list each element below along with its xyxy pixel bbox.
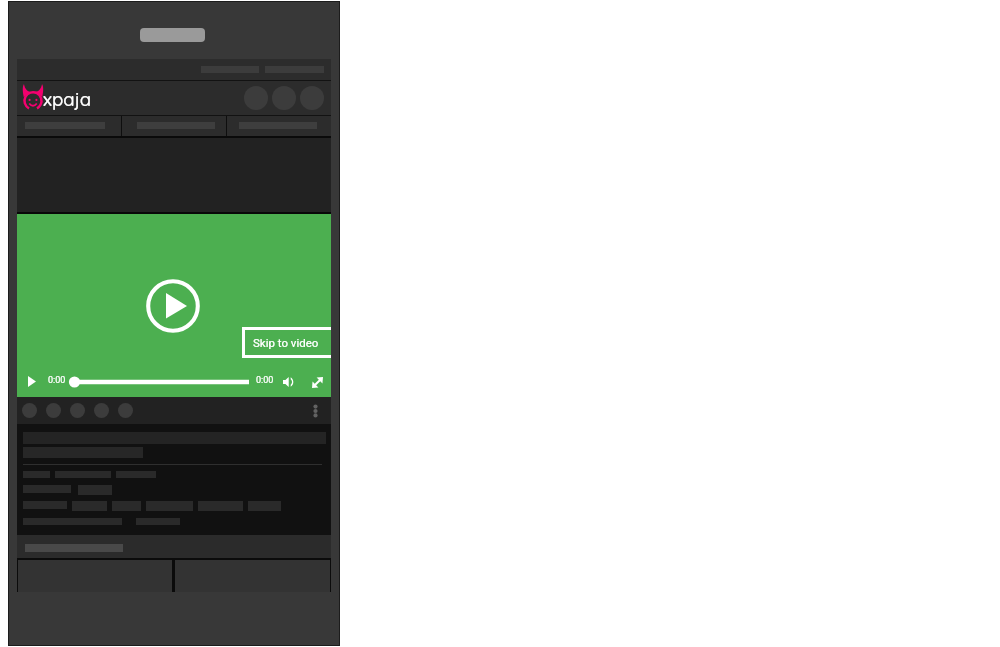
button[interactable]: Tab 2	[122, 116, 226, 136]
button[interactable]: Tab 1	[17, 116, 121, 136]
button[interactable]: Play	[28, 376, 36, 387]
staticText: xpaja	[43, 87, 92, 110]
button[interactable]: Header action 2	[272, 86, 296, 110]
button[interactable]: Chip 2	[46, 403, 61, 418]
button[interactable]: Chip 4	[94, 403, 109, 418]
button[interactable]: Header action 1	[244, 86, 268, 110]
button[interactable]: Volume	[283, 377, 294, 387]
button[interactable]: Chip 3	[70, 403, 85, 418]
button[interactable]: Header action 3	[300, 86, 324, 110]
button[interactable]: Fullscreen	[312, 377, 323, 388]
button[interactable]: Tab 3	[227, 116, 331, 136]
staticText: 0:00	[256, 375, 274, 386]
button[interactable]: Chip 5	[118, 403, 133, 418]
button[interactable]: Chip 1	[22, 403, 37, 418]
staticText: 0:00	[48, 375, 66, 386]
button[interactable]: Skip to video	[242, 327, 331, 358]
button[interactable]: Play video	[145, 278, 201, 334]
button[interactable]: More options	[307, 403, 323, 419]
staticText: Skip to video	[253, 336, 319, 349]
